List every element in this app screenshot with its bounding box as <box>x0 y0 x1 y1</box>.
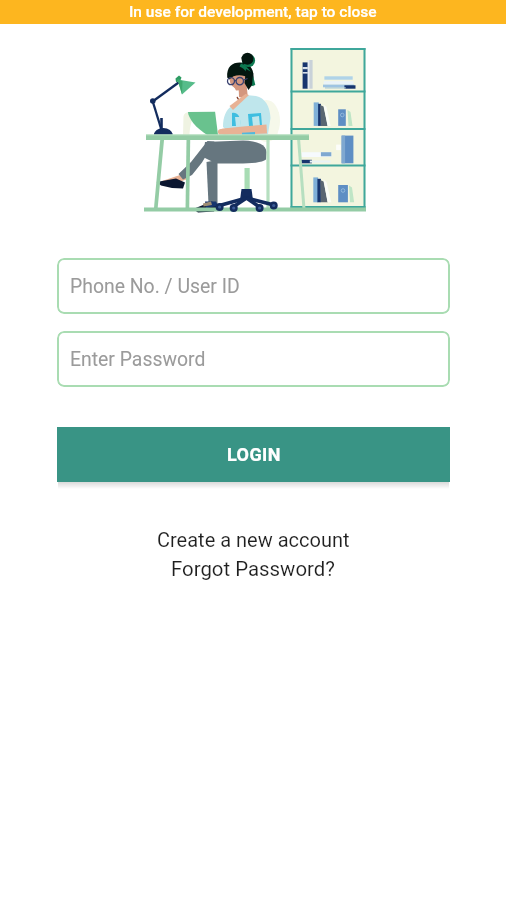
button[interactable]: In use for development, tap to close <box>0 0 506 24</box>
button[interactable]: Create a new account <box>147 525 360 554</box>
button[interactable]: Phone No. / User ID <box>57 258 450 314</box>
button[interactable]: Forgot Password? <box>161 554 345 584</box>
staticText: Create a new account <box>157 528 350 551</box>
staticText: Forgot Password? <box>171 557 335 581</box>
staticText: Enter Password <box>70 348 206 371</box>
staticText: LOGIN <box>227 444 281 465</box>
button[interactable]: LOGIN <box>57 427 450 482</box>
button[interactable]: Enter Password <box>57 331 450 387</box>
staticText: In use for development, tap to close <box>129 3 377 21</box>
staticText: Phone No. / User ID <box>70 275 240 298</box>
